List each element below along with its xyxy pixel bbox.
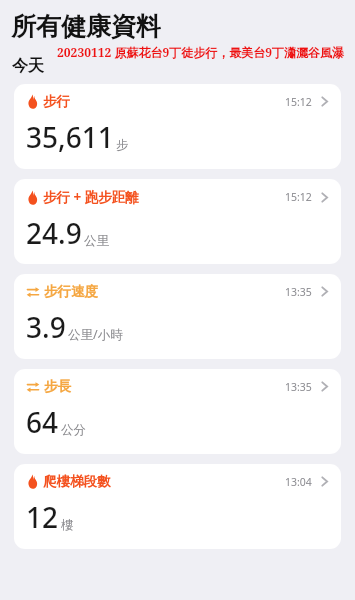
staticText: 13:35 (285, 380, 312, 394)
staticText: 3.9 (26, 308, 66, 346)
staticText: 15:12 (285, 190, 312, 204)
staticText: 35,611 (26, 118, 114, 156)
staticText: 公里/小時 (68, 326, 123, 343)
staticText: 13:35 (285, 285, 312, 299)
button[interactable]: 步行速度 (14, 274, 341, 359)
staticText: 13:04 (285, 475, 312, 489)
staticText: 公分 (61, 422, 86, 438)
staticText: 20230112 原蘇花台9丁徒步行，最美台9丁瀟灑谷風瀑 (57, 44, 344, 60)
staticText: 今天 (12, 56, 44, 76)
staticText: 64 (26, 403, 59, 441)
staticText: 24.9 (26, 214, 82, 252)
staticText: 步行 + 跑步距離 (43, 188, 139, 206)
staticText: 所有健康資料 (11, 11, 161, 42)
staticText: 步行 (43, 93, 70, 110)
button[interactable]: 步行 (14, 84, 341, 169)
staticText: 12 (26, 498, 59, 536)
staticText: 15:12 (285, 95, 312, 109)
staticText: 公里 (84, 233, 109, 249)
button[interactable]: 爬樓梯段數 (14, 464, 341, 549)
staticText: 爬樓梯段數 (43, 473, 111, 490)
staticText: 步長 (44, 378, 71, 395)
button[interactable]: 步行 + 跑步距離 (14, 179, 341, 264)
staticText: 樓 (61, 517, 74, 533)
staticText: 步 (116, 137, 129, 153)
button[interactable]: 步長 (14, 369, 341, 454)
staticText: 步行速度 (44, 283, 98, 300)
